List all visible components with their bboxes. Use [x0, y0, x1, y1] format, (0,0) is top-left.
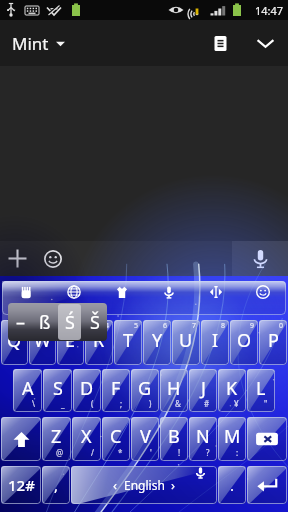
button[interactable]: T [114, 320, 142, 365]
button[interactable]: Emoji [35, 241, 70, 276]
staticText: V [140, 424, 151, 449]
button[interactable]: D [73, 369, 101, 412]
button[interactable]: Z [42, 417, 71, 461]
button[interactable]: F [102, 369, 130, 412]
button[interactable]: H [160, 369, 188, 412]
button[interactable]: G [131, 369, 159, 412]
staticText: English [124, 477, 165, 493]
staticText: _ [61, 398, 65, 409]
staticText: O [237, 328, 252, 353]
button[interactable]: A [13, 369, 42, 412]
staticText: \ [32, 398, 35, 409]
button[interactable]: Notes [198, 21, 242, 65]
staticText: # [204, 398, 210, 409]
staticText: N [196, 424, 210, 449]
staticText: * [118, 447, 123, 458]
staticText: , [54, 475, 59, 495]
button[interactable]: B [160, 417, 188, 461]
button[interactable]: – [9, 304, 31, 340]
staticText: 7 [192, 321, 197, 331]
staticText: I [212, 328, 219, 353]
button[interactable]: P [259, 320, 287, 365]
button[interactable]: Keyboard mode [2, 281, 50, 315]
staticText: Ś [65, 310, 75, 335]
button[interactable]: I [201, 320, 229, 365]
staticText: T [123, 328, 134, 353]
staticText: ¥ [234, 398, 239, 409]
staticText: Q [7, 328, 22, 353]
button[interactable]: M [218, 417, 246, 461]
staticText: X [81, 424, 92, 449]
button[interactable]: S [43, 369, 72, 412]
staticText: ß [39, 310, 51, 335]
button[interactable]: ‹ [71, 466, 217, 504]
button[interactable]: Q [1, 320, 28, 365]
button[interactable]: L [247, 369, 275, 412]
button[interactable]: Theme [98, 281, 145, 315]
staticText: 1 [20, 321, 25, 331]
staticText: 0 [279, 321, 284, 331]
button[interactable]: Š [83, 304, 106, 340]
button[interactable]: Enter [247, 466, 287, 504]
button[interactable]: Language [50, 281, 98, 315]
staticText: ? [206, 447, 210, 458]
staticText: . [230, 475, 235, 495]
staticText: E [65, 328, 76, 353]
button[interactable]: U [172, 320, 200, 365]
staticText: Y [152, 328, 163, 353]
button[interactable]: O [230, 320, 258, 365]
staticText: 8 [221, 321, 226, 331]
staticText: F [111, 376, 121, 401]
staticText: 6 [163, 321, 168, 331]
button[interactable]: J [189, 369, 217, 412]
staticText: 9 [250, 321, 255, 331]
button[interactable]: E [57, 320, 84, 365]
staticText: / [91, 447, 94, 458]
staticText: K [226, 376, 238, 401]
button[interactable]: R [85, 320, 113, 365]
staticText: " [264, 398, 268, 409]
staticText: R [93, 328, 105, 353]
button[interactable]: Y [143, 320, 171, 365]
button[interactable]: Cursor control [192, 281, 239, 315]
button[interactable]: 12# [1, 466, 41, 504]
staticText: L [256, 376, 266, 401]
button[interactable]: , [42, 466, 70, 504]
button[interactable]: Mint [0, 24, 77, 63]
button[interactable]: V [131, 417, 159, 461]
staticText: M [224, 424, 241, 449]
staticText: – [16, 310, 25, 335]
button[interactable]: . [218, 466, 246, 504]
button[interactable]: ß [33, 304, 56, 340]
button[interactable]: Voice input [145, 281, 192, 315]
button[interactable]: X [72, 417, 101, 461]
staticText: ‹ [113, 476, 118, 494]
button[interactable]: Shift [1, 417, 41, 461]
button[interactable]: C [102, 417, 130, 461]
button[interactable]: Emoji [239, 281, 286, 315]
staticText: › [171, 476, 176, 494]
staticText: ) [149, 398, 152, 409]
staticText: P [268, 328, 279, 353]
staticText: Z [51, 424, 62, 449]
staticText: Mint [12, 32, 49, 55]
button[interactable]: Attach [0, 241, 35, 276]
staticText: H [167, 376, 181, 401]
button[interactable]: Voice input [232, 241, 288, 276]
staticText: & [175, 398, 181, 409]
button[interactable]: K [218, 369, 246, 412]
button[interactable]: Ś [58, 304, 81, 340]
button[interactable]: Collapse [242, 20, 288, 66]
staticText: 5 [134, 321, 139, 331]
staticText: ( [91, 398, 94, 409]
button[interactable]: N [189, 417, 217, 461]
staticText: W [34, 328, 51, 353]
button[interactable]: W [29, 320, 56, 365]
staticText: B [168, 424, 180, 449]
button[interactable]: Backspace [247, 417, 287, 461]
staticText: U [179, 328, 193, 353]
staticText: A [22, 376, 34, 401]
staticText: S [53, 376, 63, 401]
staticText: : [236, 447, 239, 458]
